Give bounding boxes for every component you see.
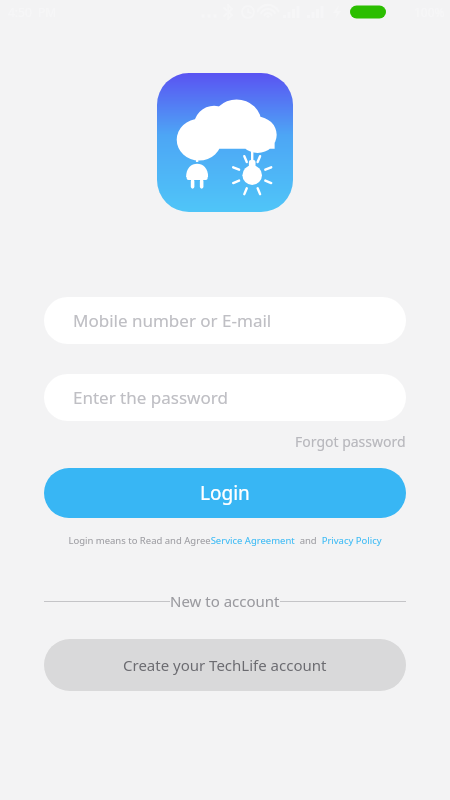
button[interactable]: Mobile number or E-mail — [44, 297, 406, 344]
staticText: Mobile number or E-mail — [73, 309, 272, 332]
button[interactable]: Login — [44, 468, 406, 518]
staticText: New to account — [170, 591, 280, 611]
button[interactable]: Login means to Read and AgreeService Agr… — [44, 534, 406, 547]
button[interactable]: Create your TechLife account — [44, 639, 406, 691]
button[interactable]: Enter the password — [44, 374, 406, 421]
staticText: Forgot password — [295, 432, 406, 451]
staticText: Login — [200, 480, 250, 506]
staticText: Create your TechLife account — [123, 655, 327, 675]
button[interactable]: Forgot password — [44, 428, 406, 454]
staticText: Enter the password — [73, 386, 228, 409]
staticText: Login means to Read and AgreeService Agr… — [68, 534, 382, 547]
